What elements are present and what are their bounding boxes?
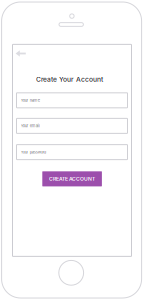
staticText: CREATE ACCOUNT bbox=[49, 176, 95, 182]
button[interactable]: CREATE ACCOUNT bbox=[42, 171, 102, 186]
button[interactable]: Back bbox=[13, 47, 30, 60]
button[interactable]: Your name bbox=[16, 93, 127, 108]
staticText: Your name bbox=[21, 98, 40, 103]
button[interactable]: Your email bbox=[16, 118, 127, 133]
staticText: Your email bbox=[21, 123, 40, 128]
button[interactable]: Your password bbox=[16, 145, 127, 160]
staticText: Your password bbox=[21, 150, 46, 154]
staticText: Create Your Account bbox=[36, 75, 103, 83]
